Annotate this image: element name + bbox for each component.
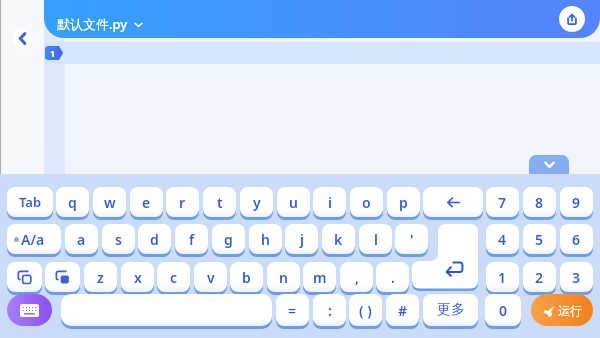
button[interactable]: 3 — [560, 262, 593, 292]
button[interactable]: q — [56, 187, 89, 217]
staticText: s — [115, 230, 122, 249]
staticText: d — [150, 230, 159, 249]
button[interactable]: l — [359, 224, 392, 254]
staticText: 4 — [498, 230, 507, 249]
button[interactable]: Copy — [7, 262, 42, 292]
button[interactable]: a — [65, 224, 98, 254]
button[interactable]: 4 — [486, 224, 519, 254]
button[interactable]: # — [386, 294, 419, 326]
button[interactable]: p — [387, 187, 420, 217]
staticText: t — [217, 193, 223, 212]
staticText: : — [328, 301, 332, 320]
staticText: 3 — [572, 268, 581, 287]
button[interactable]: 2 — [523, 262, 556, 292]
button[interactable]: Tab — [7, 187, 53, 217]
button[interactable]: Hide keyboard — [529, 155, 569, 174]
button[interactable]: . — [376, 262, 409, 292]
staticText: 5 — [535, 230, 544, 249]
button[interactable]: , — [340, 262, 373, 292]
staticText: # — [398, 301, 408, 320]
button[interactable]: 6 — [560, 224, 593, 254]
button[interactable]: j — [285, 224, 318, 254]
button[interactable]: o — [350, 187, 383, 217]
button[interactable]: : — [313, 294, 346, 326]
staticText: = — [288, 301, 297, 320]
button[interactable]: Paste — [45, 262, 80, 292]
button[interactable]: y — [240, 187, 273, 217]
staticText: b — [242, 268, 251, 287]
staticText: 运行 — [558, 303, 582, 318]
button[interactable]: m — [303, 262, 336, 292]
staticText: o — [362, 193, 371, 212]
staticText: . — [391, 268, 395, 287]
button[interactable]: s — [102, 224, 135, 254]
staticText: r — [179, 193, 186, 212]
staticText: 6 — [572, 230, 581, 249]
button[interactable]: ' — [395, 224, 428, 254]
staticText: e — [142, 193, 151, 212]
staticText: p — [399, 193, 408, 212]
button[interactable]: 7 — [486, 187, 519, 217]
staticText: Tab — [19, 193, 42, 211]
button[interactable]: g — [212, 224, 245, 254]
staticText: 1 — [498, 268, 507, 287]
button[interactable]: w — [93, 187, 126, 217]
button[interactable]: 1 — [486, 262, 519, 292]
button[interactable]: Switch keyboard — [7, 294, 52, 326]
staticText: q — [68, 193, 77, 212]
button[interactable]: 运行 — [531, 294, 593, 326]
staticText: 7 — [498, 193, 507, 212]
button[interactable]: b — [230, 262, 263, 292]
staticText: 更多 — [437, 301, 465, 319]
button[interactable]: v — [194, 262, 227, 292]
button[interactable]: = — [276, 294, 309, 326]
staticText: n — [279, 268, 288, 287]
button[interactable]: k — [322, 224, 355, 254]
button[interactable]: i — [313, 187, 346, 217]
button[interactable]: n — [267, 262, 300, 292]
staticText: 默认文件.py — [57, 15, 128, 33]
staticText: u — [289, 193, 298, 212]
button[interactable]: e — [130, 187, 163, 217]
button[interactable]: f — [175, 224, 208, 254]
button[interactable]: Share — [559, 6, 585, 32]
staticText: 0 — [499, 301, 508, 320]
staticText: z — [97, 268, 104, 287]
staticText: l — [374, 230, 378, 249]
staticText: c — [170, 268, 178, 287]
staticText: h — [261, 230, 270, 249]
staticText: a — [77, 230, 86, 249]
button[interactable]: 5 — [523, 224, 556, 254]
button[interactable]: z — [84, 262, 117, 292]
button[interactable]: A/a — [7, 224, 61, 254]
staticText: i — [328, 193, 332, 212]
button[interactable]: ( ) — [349, 294, 382, 326]
staticText: v — [207, 268, 215, 287]
staticText: g — [224, 230, 233, 249]
staticText: A/a — [21, 230, 45, 249]
button[interactable]: Space — [61, 294, 272, 326]
staticText: 1 — [50, 47, 56, 59]
button[interactable]: Enter — [412, 224, 478, 291]
button[interactable]: t — [203, 187, 236, 217]
staticText: x — [134, 268, 142, 287]
button[interactable]: h — [249, 224, 282, 254]
button[interactable]: Back — [12, 28, 33, 49]
button[interactable]: u — [277, 187, 310, 217]
staticText: 2 — [535, 268, 544, 287]
button[interactable]: c — [157, 262, 190, 292]
button[interactable]: 9 — [560, 187, 593, 217]
button[interactable]: r — [166, 187, 199, 217]
button[interactable]: 更多 — [423, 294, 478, 326]
staticText: k — [334, 230, 343, 249]
staticText: f — [189, 230, 195, 249]
button[interactable]: d — [138, 224, 171, 254]
button[interactable]: 默认文件.py — [57, 15, 144, 33]
staticText: m — [313, 268, 327, 287]
button[interactable]: 8 — [523, 187, 556, 217]
button[interactable]: 0 — [485, 294, 521, 326]
button[interactable]: x — [121, 262, 154, 292]
staticText: y — [253, 193, 261, 212]
button[interactable]: Backspace — [423, 187, 483, 217]
staticText: ( ) — [359, 301, 372, 320]
